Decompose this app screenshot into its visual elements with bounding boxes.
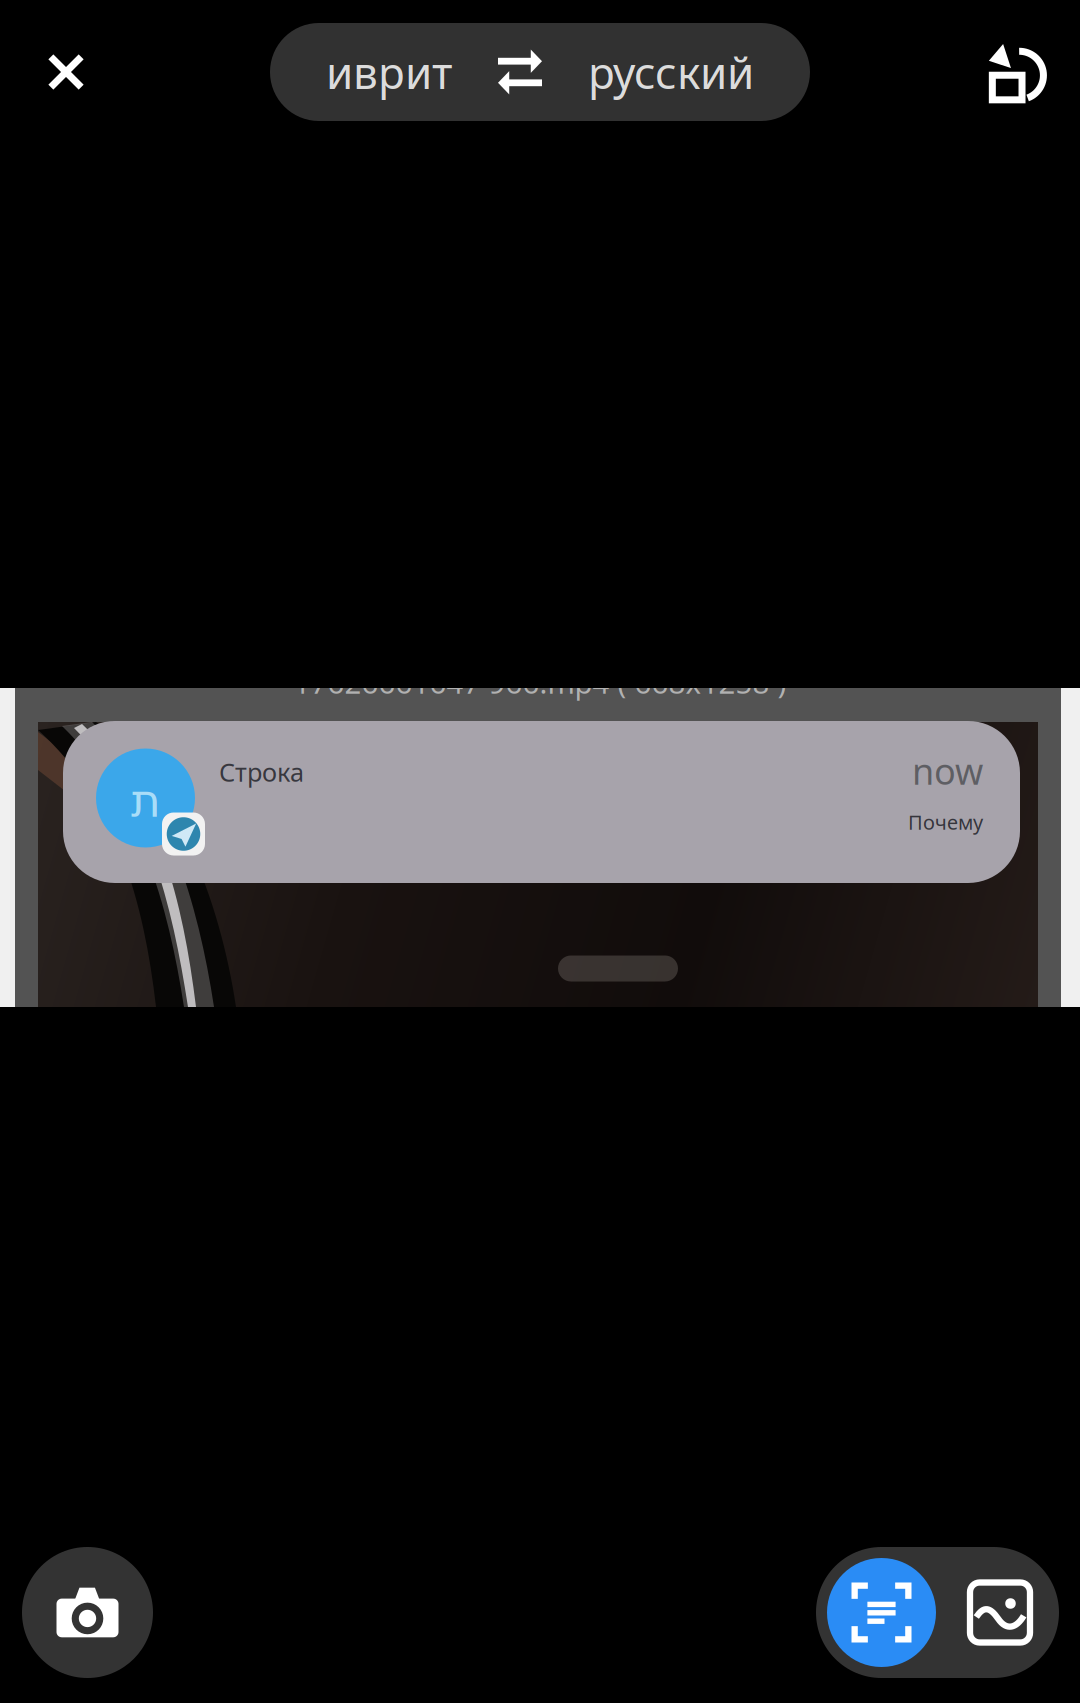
staticText: Строка	[219, 755, 304, 789]
staticText: Почему	[908, 809, 983, 835]
button[interactable]: Close	[16, 22, 116, 122]
button[interactable]: иврит	[270, 23, 810, 121]
button[interactable]: Take photo	[22, 1547, 153, 1678]
staticText: ת	[130, 775, 160, 827]
staticText: иврит	[326, 43, 452, 101]
button[interactable]: Scan text	[827, 1558, 936, 1667]
button[interactable]: Choose photo from library	[952, 1558, 1048, 1667]
button[interactable]: Rotate image	[966, 22, 1066, 122]
staticText: now	[912, 747, 983, 795]
staticText: 17626661647 966.mp4 ( 668x1258 )	[293, 663, 786, 702]
staticText: русский	[588, 43, 754, 101]
